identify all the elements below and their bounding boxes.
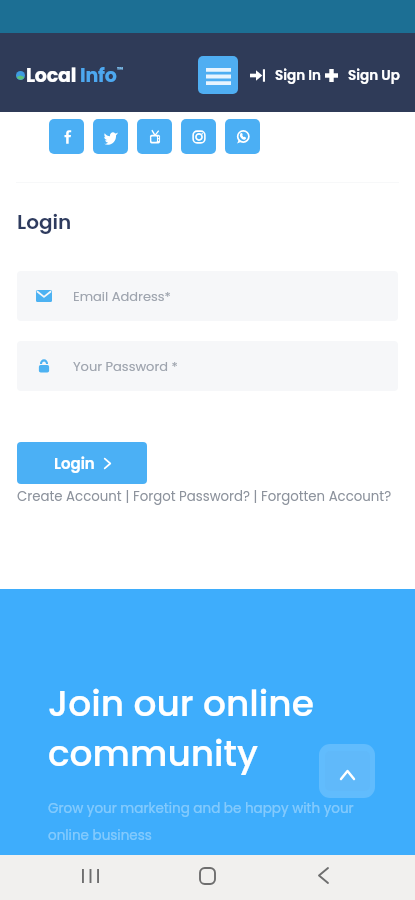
- button[interactable]: Recent apps: [61, 853, 119, 898]
- staticText: Your Password *: [73, 357, 178, 375]
- staticText: Local: [26, 62, 80, 89]
- button[interactable]: WhatsApp: [225, 119, 260, 154]
- staticText: Email Address*: [73, 287, 171, 305]
- button[interactable]: Sign Up: [325, 66, 400, 85]
- button[interactable]: YouTube: [137, 119, 172, 154]
- button[interactable]: Email Address*: [36, 271, 398, 321]
- button[interactable]: Local: [16, 62, 124, 89]
- button[interactable]: Create Account: [17, 487, 122, 506]
- button[interactable]: Back: [294, 853, 352, 898]
- staticText: Info: [80, 62, 117, 89]
- button[interactable]: Open navigation menu: [198, 56, 238, 94]
- button[interactable]: Scroll to top: [325, 751, 370, 791]
- staticText: Sign Up: [348, 66, 400, 85]
- button[interactable]: Instagram: [181, 119, 216, 154]
- staticText: Sign In: [275, 66, 321, 85]
- button[interactable]: Sign In: [250, 66, 321, 85]
- staticText: Login: [54, 453, 95, 474]
- staticText: ™: [117, 65, 124, 75]
- staticText: |: [122, 487, 133, 506]
- staticText: Login: [17, 208, 72, 236]
- button[interactable]: Twitter: [93, 119, 128, 154]
- staticText: Grow your marketing and be happy with yo…: [48, 799, 354, 845]
- button[interactable]: Forgotten Account?: [261, 487, 392, 506]
- button[interactable]: Home: [178, 853, 236, 898]
- staticText: Join our online community: [48, 678, 314, 778]
- button[interactable]: Facebook: [49, 119, 84, 154]
- button[interactable]: Login: [17, 442, 147, 484]
- button[interactable]: Your Password *: [36, 341, 398, 391]
- staticText: |: [250, 487, 261, 506]
- button[interactable]: Forgot Password?: [133, 487, 250, 506]
